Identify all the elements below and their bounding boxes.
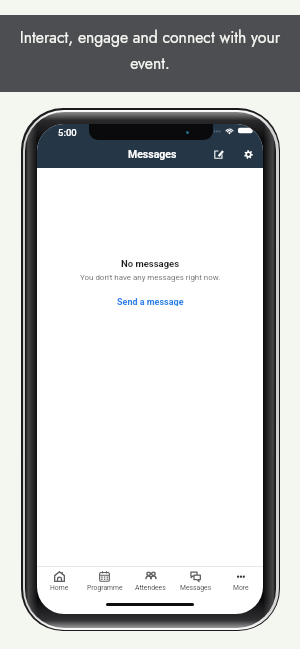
staticText: Interact, engage and connect with your e… bbox=[8, 26, 292, 75]
staticText: Programme bbox=[87, 584, 123, 592]
staticText: No messages bbox=[121, 258, 180, 269]
staticText: 5:00 bbox=[58, 127, 77, 138]
button[interactable]: Compose message bbox=[208, 143, 230, 165]
button[interactable]: Send a message bbox=[107, 294, 194, 309]
button[interactable]: Home bbox=[37, 570, 82, 594]
staticText: Messages bbox=[180, 584, 212, 592]
staticText: Send a message bbox=[117, 297, 184, 306]
staticText: Messages bbox=[128, 148, 177, 160]
button[interactable]: More bbox=[218, 570, 263, 594]
button[interactable]: Messages bbox=[173, 570, 218, 594]
button[interactable]: Attendees bbox=[128, 570, 173, 594]
button[interactable]: Programme bbox=[82, 570, 127, 594]
staticText: Home bbox=[50, 584, 69, 592]
staticText: Attendees bbox=[135, 584, 166, 592]
staticText: You don't have any messages right now. bbox=[80, 273, 221, 282]
staticText: More bbox=[233, 584, 249, 592]
button[interactable]: Settings bbox=[237, 143, 259, 165]
